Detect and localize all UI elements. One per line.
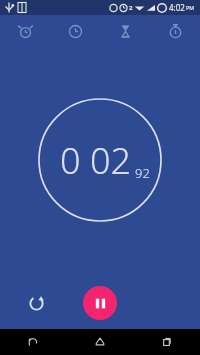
button[interactable]: Timer [100,15,150,48]
button[interactable]: Pause [83,286,117,320]
button[interactable]: Home [66,329,133,355]
button[interactable]: Recents [133,329,200,355]
button[interactable]: Back [0,329,66,355]
button[interactable]: Stopwatch [150,15,200,48]
button[interactable]: Reset [20,287,52,319]
staticText: 92 [135,164,150,182]
staticText: 0 02 [60,136,132,185]
staticText: 4:02 [169,2,185,13]
staticText: 2 [129,4,133,12]
staticText: PM [186,4,195,11]
button[interactable]: Clock [50,15,100,48]
button[interactable]: Alarm [0,15,50,48]
